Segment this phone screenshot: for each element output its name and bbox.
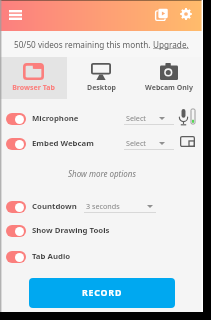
staticText: Show Drawing Tools <box>32 225 110 236</box>
button[interactable]: Countdown <box>0 194 203 219</box>
staticText: 50/50 videos remaining this month. <box>14 39 153 50</box>
staticText: Embed Webcam <box>32 138 94 149</box>
staticText: RECORD <box>82 287 123 299</box>
button[interactable]: RECORD <box>29 278 175 308</box>
staticText: Countdown <box>32 201 77 212</box>
button[interactable]: Embed Webcam <box>0 131 203 156</box>
staticText: Select <box>126 138 146 148</box>
button[interactable]: My recordings <box>152 6 170 24</box>
staticText: Microphone <box>32 113 79 124</box>
button[interactable]: Show Drawing Tools <box>0 218 203 243</box>
button[interactable]: Browser Tab <box>0 57 67 99</box>
staticText: Show more options <box>68 168 136 179</box>
staticText: 3 seconds <box>86 201 120 211</box>
button[interactable]: Desktop <box>67 57 135 99</box>
staticText: Tab Audio <box>32 251 71 262</box>
staticText: Desktop <box>87 83 116 93</box>
staticText: Select <box>126 113 146 123</box>
button[interactable]: Webcam Only <box>135 57 203 99</box>
button[interactable]: Tab Audio <box>0 244 203 269</box>
staticText: Webcam Only <box>145 83 193 93</box>
staticText: Browser Tab <box>12 83 55 93</box>
button[interactable]: Settings <box>177 5 195 23</box>
button[interactable]: Menu <box>6 6 24 24</box>
button[interactable]: Microphone <box>0 106 203 131</box>
button[interactable]: Upgrade. <box>153 39 189 50</box>
